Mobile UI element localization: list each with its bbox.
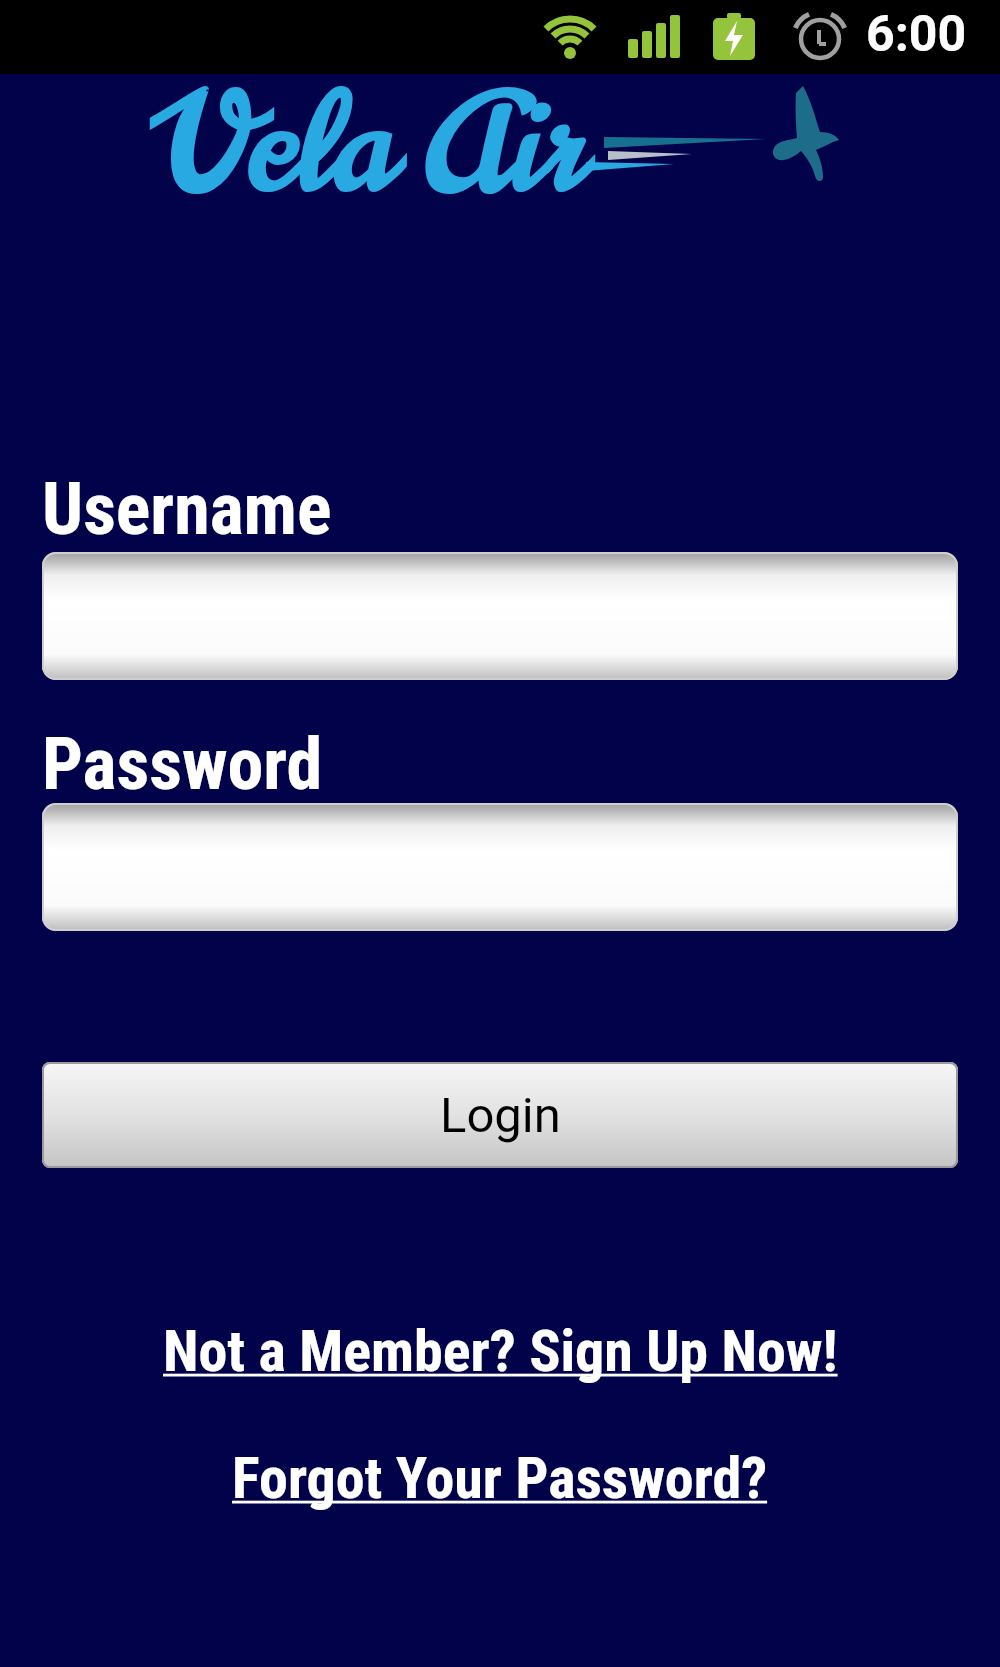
staticText: Password <box>42 722 323 806</box>
button[interactable]: Login <box>42 1062 958 1168</box>
staticText: Username <box>42 467 332 551</box>
staticText: Login <box>440 1087 561 1144</box>
staticText: Vela Air <box>156 51 586 240</box>
button[interactable]: Forgot Your Password? <box>232 1444 768 1512</box>
button[interactable] <box>42 552 958 680</box>
button[interactable] <box>42 803 958 931</box>
staticText: 6:00 <box>866 5 967 64</box>
button[interactable]: Not a Member? Sign Up Now! <box>163 1317 838 1385</box>
